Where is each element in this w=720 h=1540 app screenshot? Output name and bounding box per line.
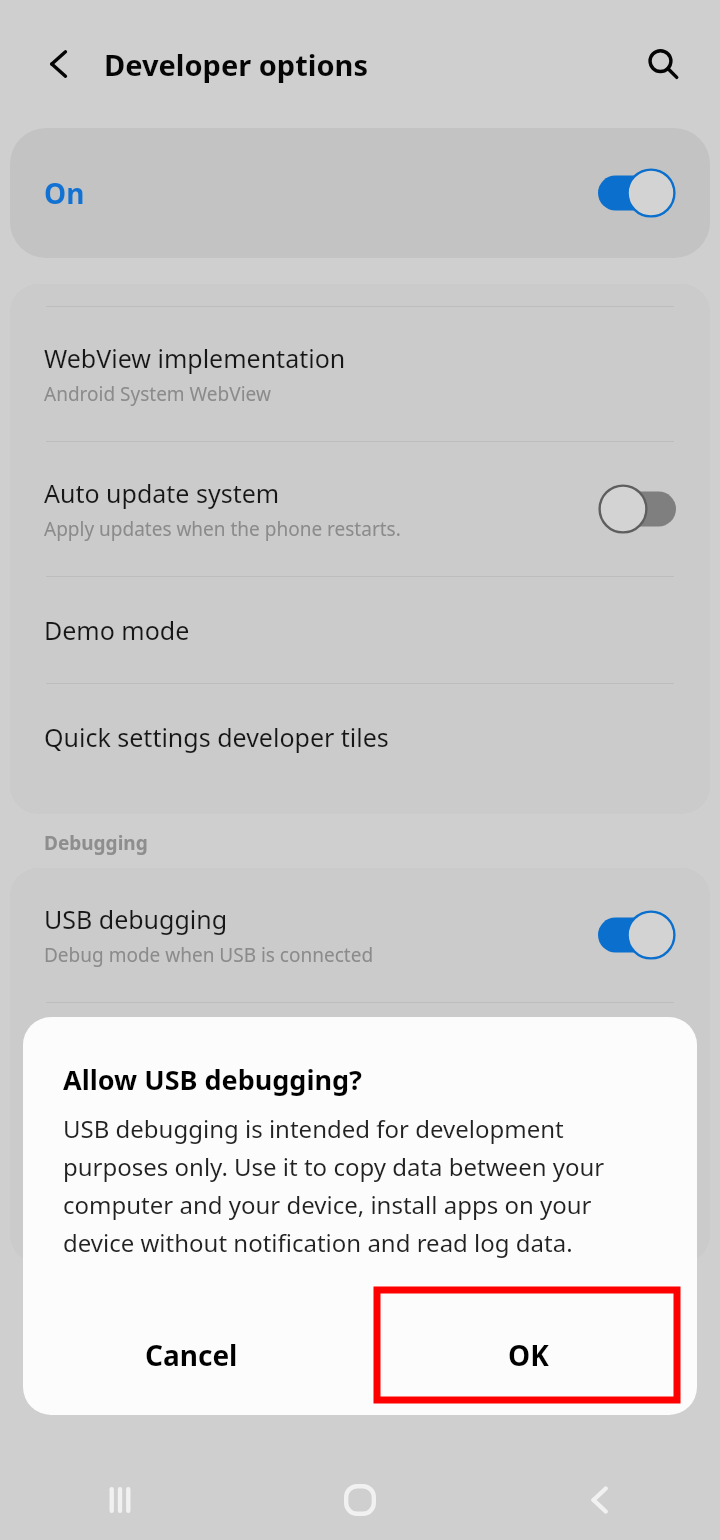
button[interactable]: Search [632, 33, 694, 95]
staticText: Debug mode when USB is connected [44, 942, 374, 968]
staticText: USB debugging [44, 902, 228, 936]
staticText: WebView implementation [44, 341, 346, 375]
staticText: Apply updates when the phone restarts. [44, 516, 401, 542]
staticText: Debugging [44, 830, 148, 856]
staticText: Cancel [145, 1336, 238, 1374]
button[interactable]: Auto update system [10, 442, 710, 576]
staticText: Quick settings developer tiles [44, 720, 389, 754]
button[interactable]: Home [240, 1460, 480, 1540]
button[interactable]: Cancel [23, 1295, 360, 1415]
staticText: Disable automatic revocation of adb auth… [44, 1072, 584, 1128]
staticText: Auto update system [44, 476, 280, 510]
button[interactable]: Disable adb authorization timeout [10, 1003, 710, 1263]
staticText: Android System WebView [44, 381, 271, 407]
staticText: On [44, 174, 85, 212]
button[interactable]: WebView implementation [10, 307, 710, 441]
button[interactable]: Quick settings developer tiles [10, 684, 710, 790]
staticText: Allow USB debugging? [63, 1061, 362, 1098]
staticText: Demo mode [44, 613, 190, 647]
button[interactable]: On [10, 128, 710, 258]
button[interactable]: USB debugging [10, 868, 710, 1002]
button[interactable]: Back [28, 33, 90, 95]
button[interactable]: Switch off [598, 484, 676, 534]
staticText: Developer options [104, 45, 368, 84]
button[interactable]: Demo mode [10, 577, 710, 683]
staticText: OK [508, 1336, 549, 1374]
staticText: USB debugging is intended for developmen… [63, 1112, 665, 1259]
button[interactable]: Switch on [598, 168, 676, 218]
button[interactable]: Recents [0, 1460, 240, 1540]
button[interactable]: Switch on [598, 910, 676, 960]
button[interactable]: OK [360, 1295, 697, 1415]
